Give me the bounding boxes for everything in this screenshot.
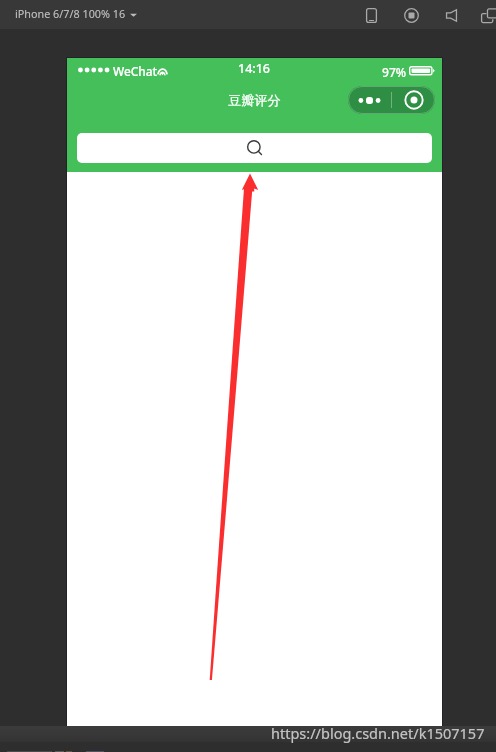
button[interactable]: Sound — [439, 3, 463, 27]
staticText: 97% — [382, 64, 407, 80]
staticText: WeChat — [113, 63, 158, 79]
button[interactable]: Record — [399, 3, 423, 27]
button[interactable]: Detach window — [478, 3, 496, 27]
button[interactable]: Close mini program — [392, 86, 435, 114]
button[interactable]: iPhone 6/7/8 100% 16 — [15, 6, 137, 21]
button[interactable]: Device type — [359, 3, 383, 27]
button[interactable]: Search — [77, 133, 432, 163]
button[interactable]: More — [348, 86, 391, 114]
staticText: 豆瓣评分 — [228, 92, 281, 109]
staticText: 14:16 — [238, 60, 271, 77]
staticText: iPhone 6/7/8 100% 16 — [15, 6, 126, 21]
staticText: https://blog.csdn.net/k1507157 — [271, 723, 485, 743]
